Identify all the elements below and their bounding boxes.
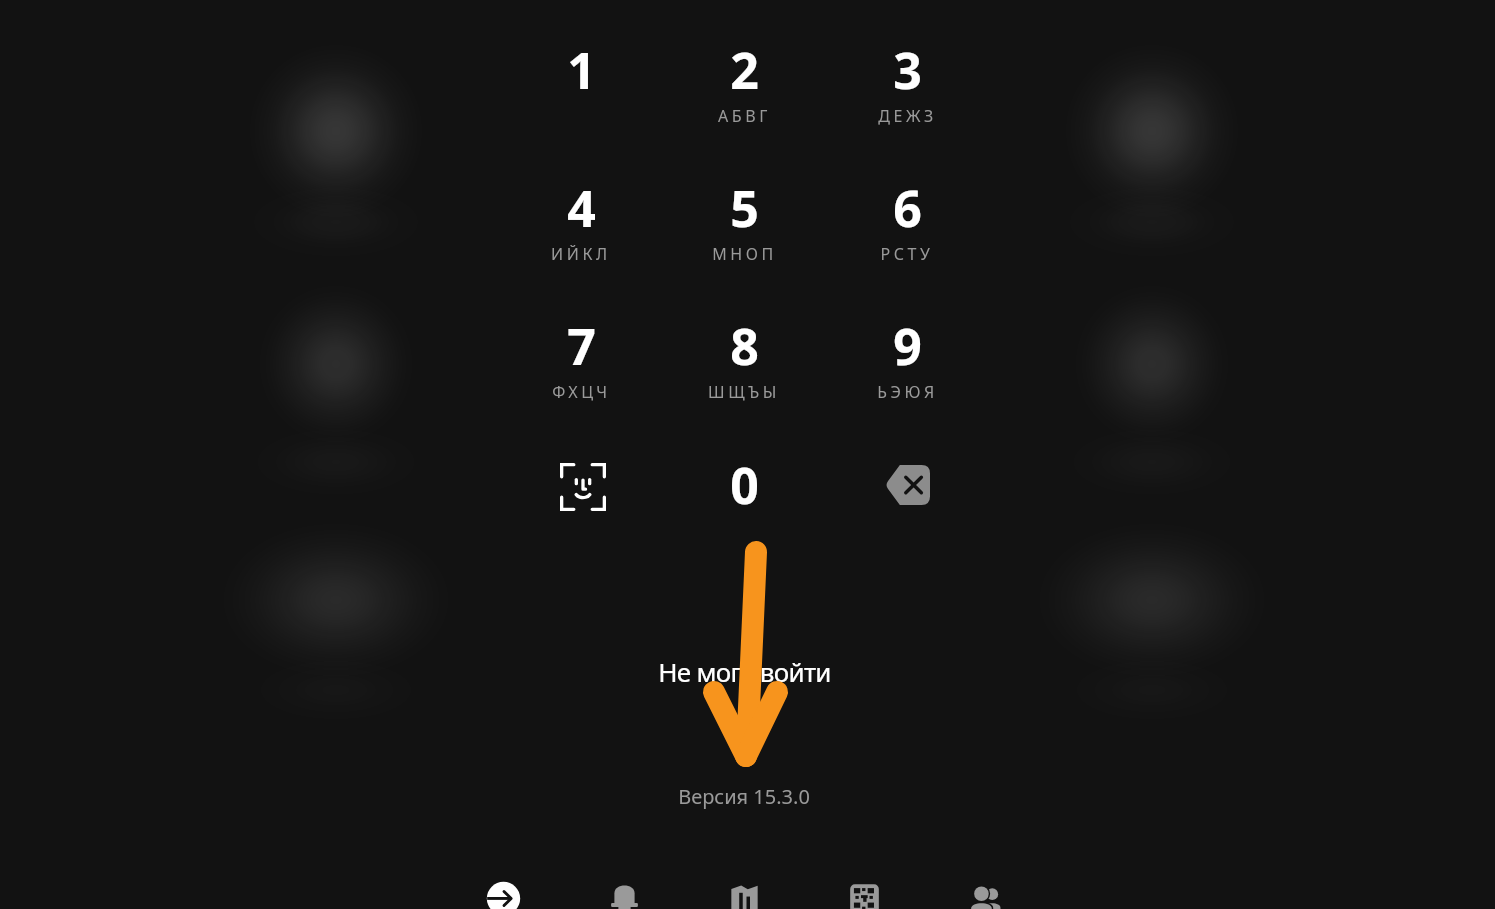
- button[interactable]: 1: [523, 36, 639, 141]
- staticText: 6: [893, 174, 922, 242]
- button[interactable]: 2: [686, 36, 802, 141]
- staticText: ДЕЖЗ: [878, 105, 937, 127]
- button[interactable]: 6: [849, 174, 965, 279]
- staticText: МНОП: [712, 243, 777, 265]
- button[interactable]: 5: [686, 174, 802, 279]
- button[interactable]: QR-код: [822, 866, 906, 909]
- staticText: ШЩЪЫ: [708, 381, 780, 403]
- staticText: ЬЭЮЯ: [877, 381, 938, 403]
- staticText: 2: [730, 36, 759, 104]
- staticText: Не могу войти: [658, 654, 831, 689]
- staticText: 1: [567, 36, 596, 104]
- staticText: РСТУ: [880, 243, 934, 265]
- staticText: Версия 15.3.0: [678, 783, 810, 810]
- button[interactable]: Вход: [461, 866, 545, 909]
- button[interactable]: Карта: [702, 866, 786, 909]
- button[interactable]: Не могу войти: [619, 651, 869, 691]
- staticText: АБВГ: [718, 105, 771, 127]
- button[interactable]: Уведомления: [582, 866, 666, 909]
- staticText: 0: [730, 451, 759, 519]
- button[interactable]: 7: [523, 312, 639, 417]
- button[interactable]: 9: [849, 312, 965, 417]
- staticText: 3: [893, 36, 922, 104]
- staticText: 9: [893, 312, 922, 380]
- button[interactable]: Контакты: [942, 866, 1026, 909]
- button[interactable]: 4: [523, 174, 639, 279]
- staticText: 8: [730, 312, 759, 380]
- staticText: 5: [730, 174, 759, 242]
- staticText: ФХЦЧ: [552, 381, 611, 403]
- staticText: 7: [567, 312, 596, 380]
- button[interactable]: 0: [686, 451, 802, 556]
- staticText: ИЙКЛ: [551, 243, 611, 265]
- button[interactable]: Удалить: [862, 440, 952, 530]
- button[interactable]: 3: [849, 36, 965, 141]
- staticText: 4: [567, 174, 596, 242]
- button[interactable]: Вход по лицу: [538, 442, 628, 532]
- button[interactable]: 8: [686, 312, 802, 417]
